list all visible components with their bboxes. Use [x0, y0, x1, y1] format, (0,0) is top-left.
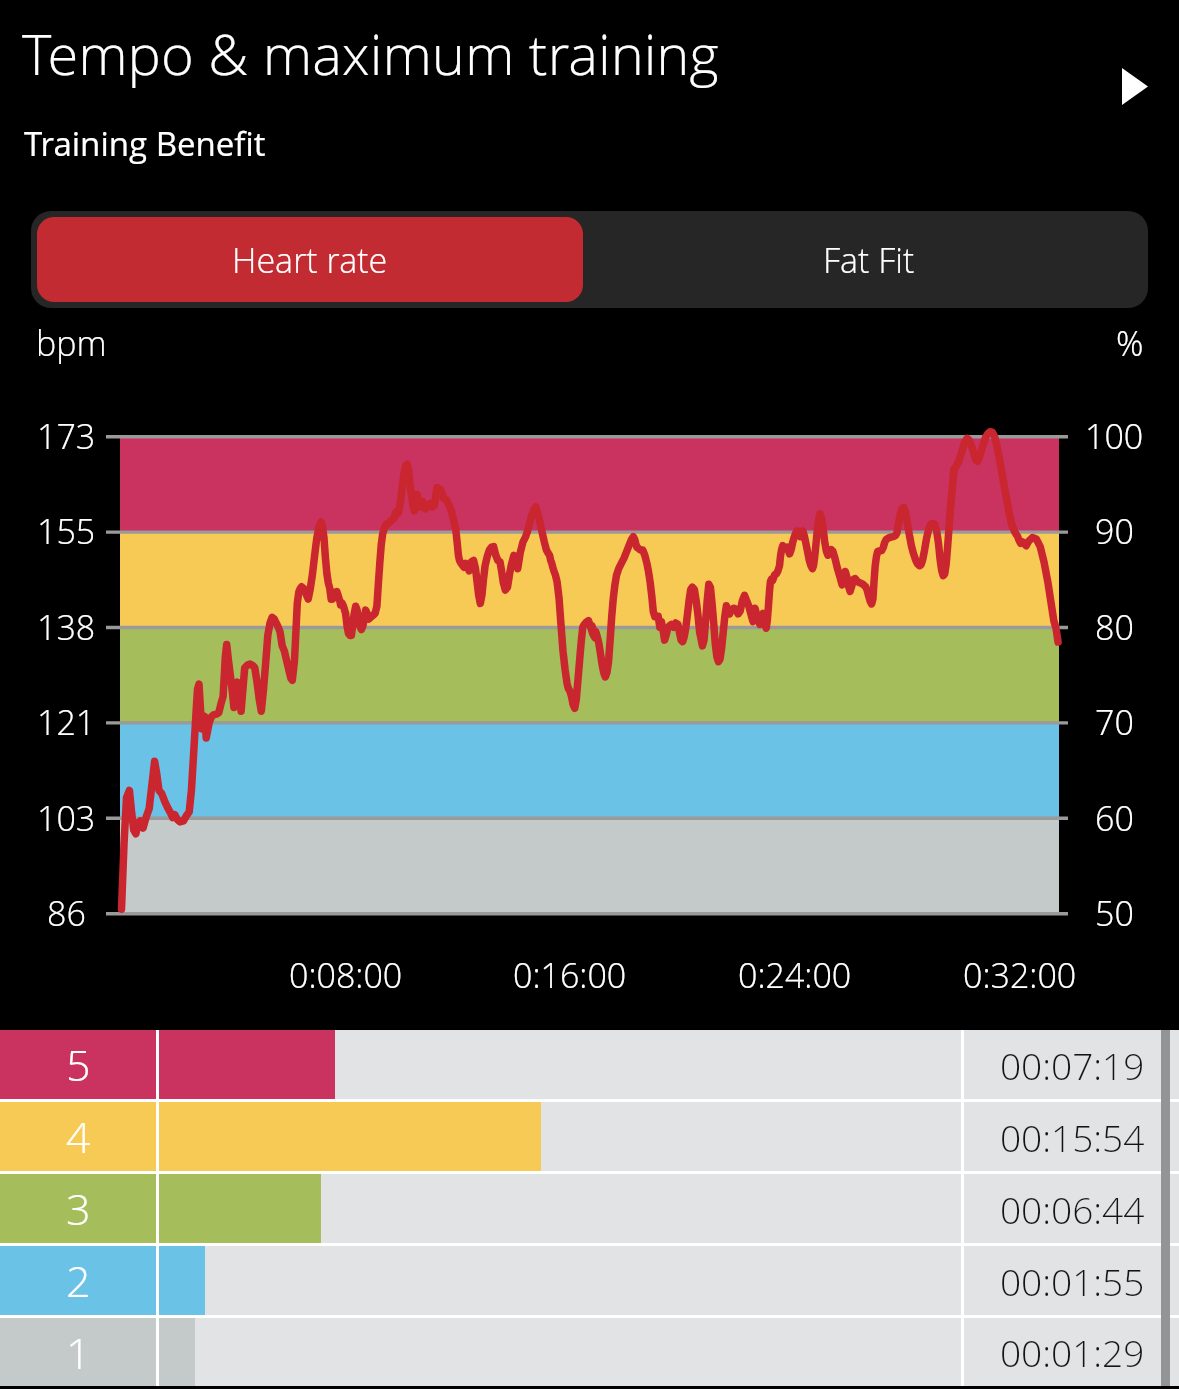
- button[interactable]: 3: [0, 1174, 1179, 1243]
- staticText: Training Benefit: [24, 121, 266, 166]
- button[interactable]: 5: [0, 1030, 1179, 1099]
- button[interactable]: 4: [0, 1102, 1179, 1171]
- staticText: 90: [1095, 508, 1134, 554]
- staticText: 138: [37, 604, 96, 650]
- staticText: 70: [1095, 699, 1134, 745]
- staticText: 00:06:44: [1000, 1184, 1145, 1234]
- button[interactable]: Play: [1092, 44, 1177, 129]
- staticText: 60: [1095, 795, 1134, 841]
- staticText: 3: [66, 1179, 91, 1238]
- staticText: 0:08:00: [289, 952, 403, 998]
- staticText: 2: [66, 1251, 91, 1310]
- staticText: 0:16:00: [513, 952, 627, 998]
- staticText: 86: [47, 890, 86, 936]
- staticText: 50: [1095, 890, 1134, 936]
- staticText: 00:15:54: [1000, 1112, 1145, 1162]
- staticText: 121: [37, 699, 96, 745]
- button[interactable]: 2: [0, 1246, 1179, 1315]
- staticText: 4: [66, 1107, 91, 1166]
- staticText: 173: [37, 413, 96, 459]
- staticText: 80: [1095, 604, 1134, 650]
- staticText: 103: [37, 795, 96, 841]
- staticText: 00:01:55: [1000, 1256, 1145, 1306]
- button[interactable]: Fat Fit: [589, 211, 1148, 308]
- staticText: Tempo & maximum training: [22, 15, 719, 91]
- staticText: 1: [66, 1323, 91, 1382]
- staticText: 5: [66, 1035, 91, 1094]
- staticText: %: [1116, 320, 1144, 366]
- staticText: bpm: [36, 320, 107, 366]
- staticText: Fat Fit: [823, 237, 915, 283]
- staticText: 00:07:19: [1000, 1040, 1145, 1090]
- staticText: 0:24:00: [738, 952, 852, 998]
- staticText: 00:01:29: [1000, 1327, 1145, 1377]
- button[interactable]: 1: [0, 1318, 1179, 1386]
- staticText: 0:32:00: [963, 952, 1077, 998]
- staticText: 100: [1085, 413, 1144, 459]
- staticText: 155: [37, 508, 96, 554]
- staticText: Heart rate: [232, 237, 388, 283]
- button[interactable]: Heart rate: [37, 217, 583, 302]
